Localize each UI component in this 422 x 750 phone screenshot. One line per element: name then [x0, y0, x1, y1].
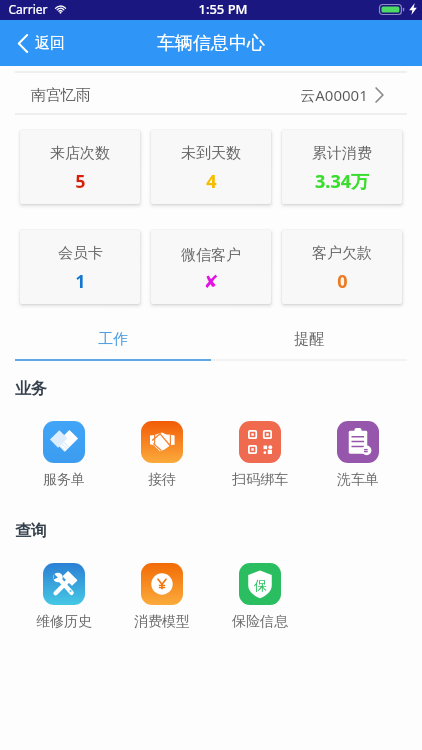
staticText: 维修历史 [36, 613, 92, 631]
staticText: 接待 [148, 471, 176, 489]
staticText: 云A00001 [300, 85, 368, 105]
staticText: 业务 [15, 379, 47, 399]
staticText: 未到天数 [181, 144, 241, 163]
staticText: Carrier [8, 1, 48, 17]
staticText: 1:55 PM [198, 0, 248, 18]
staticText: 3.34万 [315, 169, 369, 194]
button[interactable]: 提醒 [211, 323, 407, 356]
staticText: 来店次数 [50, 144, 110, 163]
staticText: 保险信息 [232, 613, 288, 631]
staticText: 车辆信息中心 [157, 32, 265, 55]
button[interactable]: 维修历史 [15, 563, 113, 631]
staticText: ✘ [203, 271, 219, 292]
button[interactable]: 微信客户 [151, 230, 271, 304]
button[interactable]: 返回 [0, 26, 79, 61]
button[interactable]: 会员卡 [20, 230, 140, 304]
staticText: 洗车单 [337, 471, 379, 489]
staticText: 服务单 [43, 471, 85, 489]
button[interactable]: 扫码绑车 [211, 421, 309, 489]
staticText: 4 [206, 169, 217, 194]
button[interactable]: 接待 [113, 421, 211, 489]
button[interactable]: 保 [211, 563, 309, 631]
staticText: 会员卡 [58, 244, 103, 263]
staticText: 累计消费 [312, 144, 372, 163]
button[interactable]: 南宫忆雨 [0, 66, 422, 118]
staticText: 5 [75, 169, 86, 194]
staticText: 1 [75, 269, 86, 294]
staticText: 南宫忆雨 [31, 86, 91, 105]
button[interactable]: 工作 [15, 323, 211, 356]
button[interactable]: 洗车单 [309, 421, 407, 489]
staticText: 客户欠款 [312, 244, 372, 263]
staticText: 保 [254, 577, 267, 593]
button[interactable]: 客户欠款 [282, 230, 402, 304]
staticText: 消费模型 [134, 613, 190, 631]
button[interactable]: 来店次数 [20, 130, 140, 204]
staticText: 扫码绑车 [232, 471, 288, 489]
staticText: 0 [337, 269, 348, 294]
button[interactable]: 服务单 [15, 421, 113, 489]
staticText: 工作 [98, 330, 128, 349]
staticText: 返回 [35, 34, 65, 53]
button[interactable]: 未到天数 [151, 130, 271, 204]
staticText: 微信客户 [181, 246, 241, 265]
button[interactable]: 消费模型 [113, 563, 211, 631]
button[interactable]: 累计消费 [282, 130, 402, 204]
staticText: 查询 [15, 521, 47, 541]
staticText: 提醒 [294, 330, 324, 349]
